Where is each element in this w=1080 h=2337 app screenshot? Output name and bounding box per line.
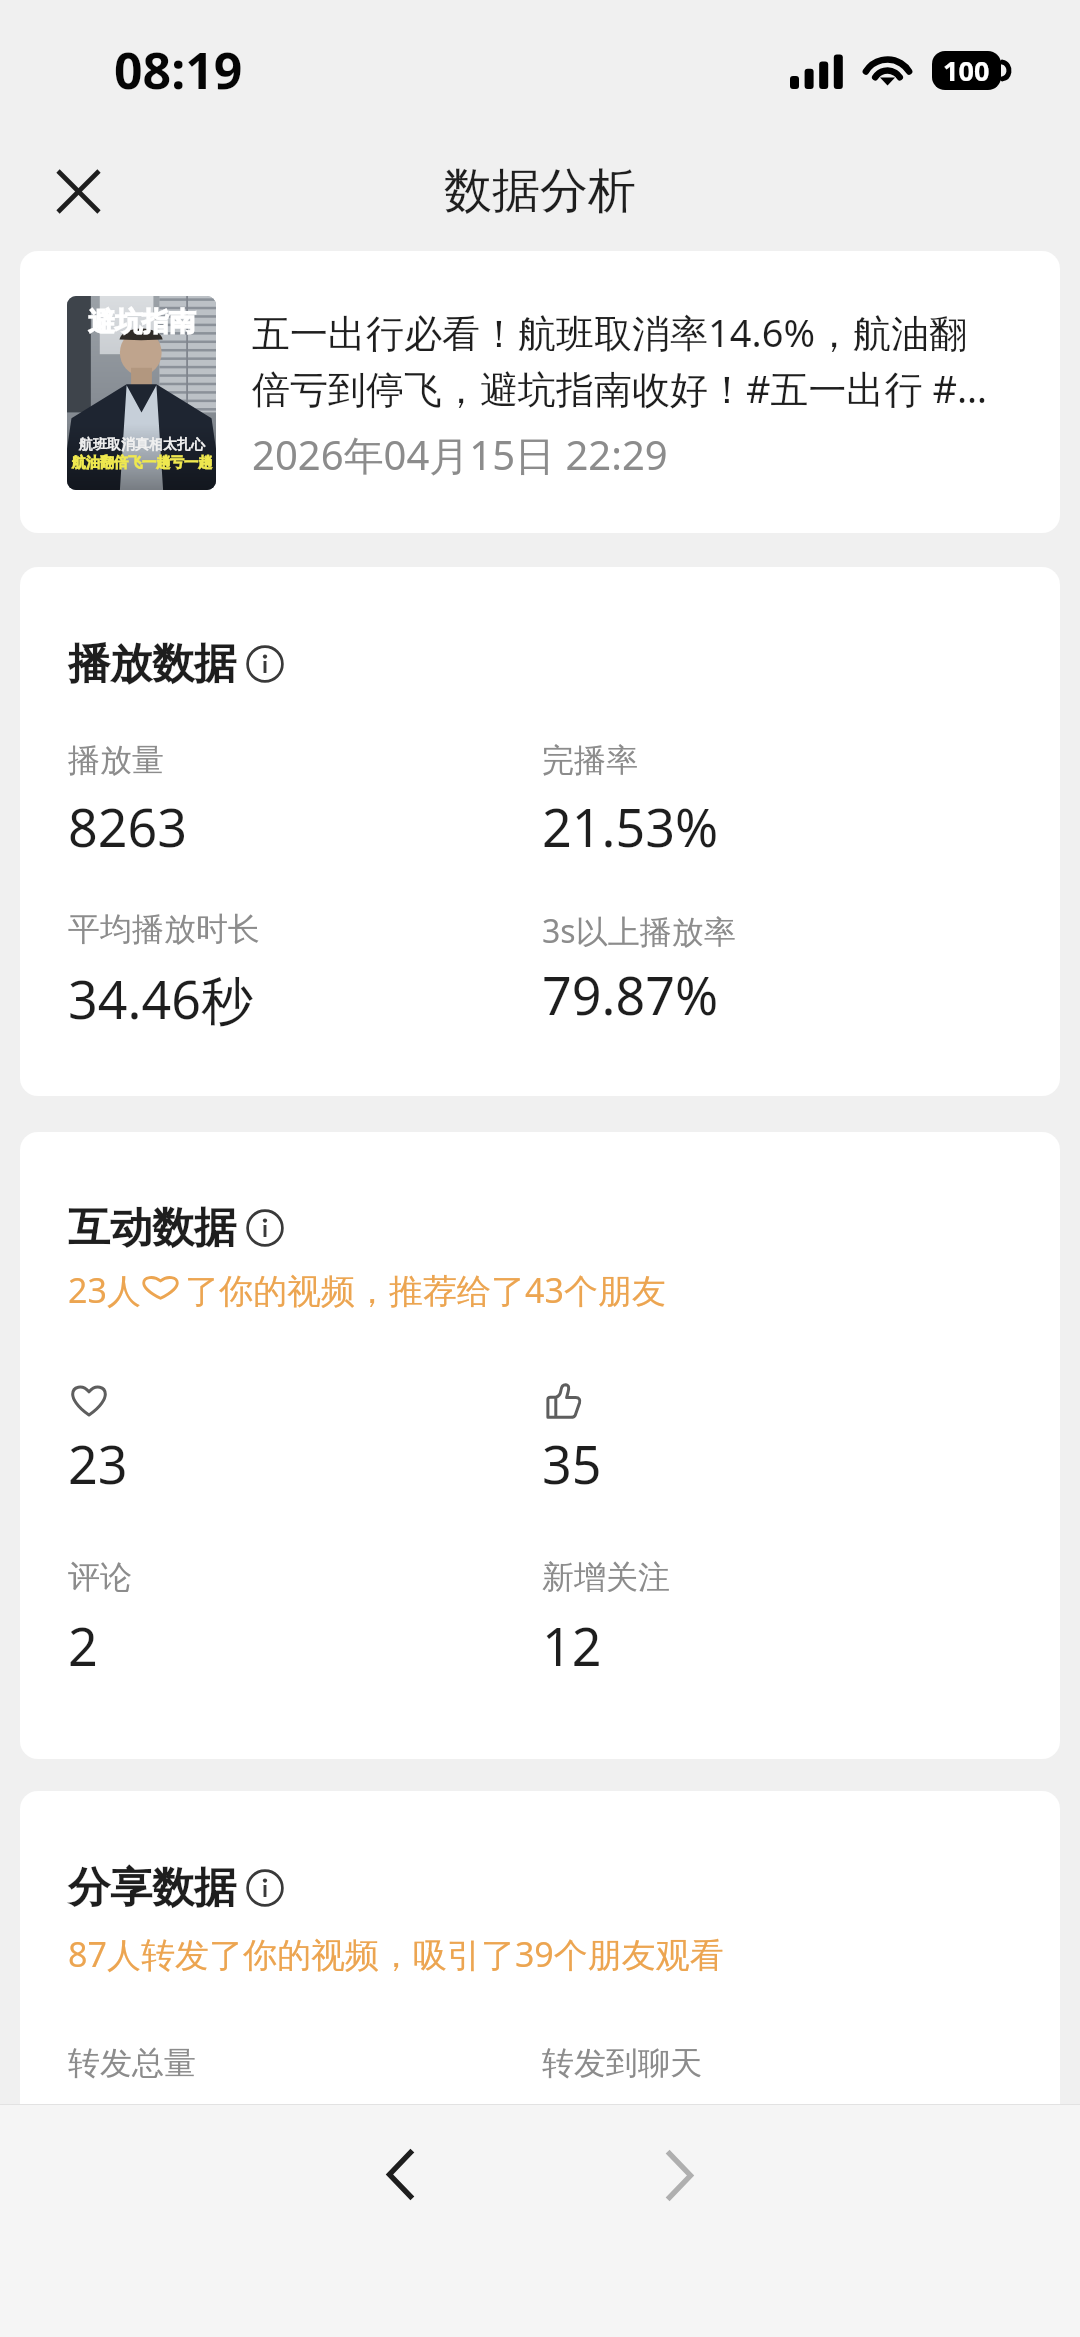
staticText: 五一出行必看！航班取消率14.6%，航油翻 倍亏到停飞，避坑指南收好！#五一出行… bbox=[252, 306, 1042, 414]
staticText: 2026年04月15日 22:29 bbox=[252, 427, 668, 482]
staticText: 35 bbox=[542, 1428, 602, 1499]
button[interactable]: 说明 bbox=[246, 1209, 284, 1247]
staticText: 100 bbox=[943, 52, 990, 89]
staticText: 分享数据 bbox=[68, 1862, 236, 1915]
staticText: 转发到聊天 bbox=[542, 2043, 702, 2083]
staticText: 23 bbox=[68, 1428, 128, 1499]
staticText: 34.46秒 bbox=[68, 963, 253, 1034]
staticText: 航油翻倍飞一趟亏一趟 bbox=[72, 454, 212, 472]
staticText: 数据分析 bbox=[0, 161, 1080, 221]
staticText: 了你的视频，推荐给了43个朋友 bbox=[185, 1267, 666, 1313]
staticText: 3s以上播放率 bbox=[542, 909, 736, 953]
staticText: 08:19 bbox=[114, 36, 243, 104]
staticText: 新增关注 bbox=[542, 1557, 670, 1597]
staticText: 12 bbox=[542, 1610, 602, 1681]
staticText: 79.87% bbox=[542, 959, 719, 1030]
staticText: 避坑指南 bbox=[88, 305, 196, 339]
staticText: 87人转发了你的视频，吸引了39个朋友观看 bbox=[68, 1931, 724, 1977]
staticText: 21.53% bbox=[542, 791, 719, 862]
staticText: 8263 bbox=[68, 791, 187, 862]
staticText: 2 bbox=[68, 1610, 98, 1681]
button[interactable]: 上一个 bbox=[355, 2129, 445, 2219]
button[interactable]: 关闭 bbox=[48, 161, 108, 221]
button[interactable]: 说明 bbox=[246, 645, 284, 683]
button[interactable]: 避坑指南 bbox=[20, 251, 1060, 533]
button[interactable]: 下一个 bbox=[635, 2130, 725, 2220]
button[interactable]: 说明 bbox=[246, 1869, 284, 1907]
staticText: 转发总量 bbox=[68, 2043, 196, 2083]
staticText: 23人 bbox=[68, 1267, 141, 1313]
staticText: 航班取消真相太扎心 bbox=[79, 436, 205, 454]
staticText: 完播率 bbox=[542, 740, 638, 780]
staticText: 平均播放时长 bbox=[68, 909, 260, 949]
staticText: 播放量 bbox=[68, 740, 164, 780]
staticText: 互动数据 bbox=[68, 1202, 236, 1255]
staticText: 播放数据 bbox=[68, 638, 236, 691]
staticText: 评论 bbox=[68, 1557, 132, 1597]
